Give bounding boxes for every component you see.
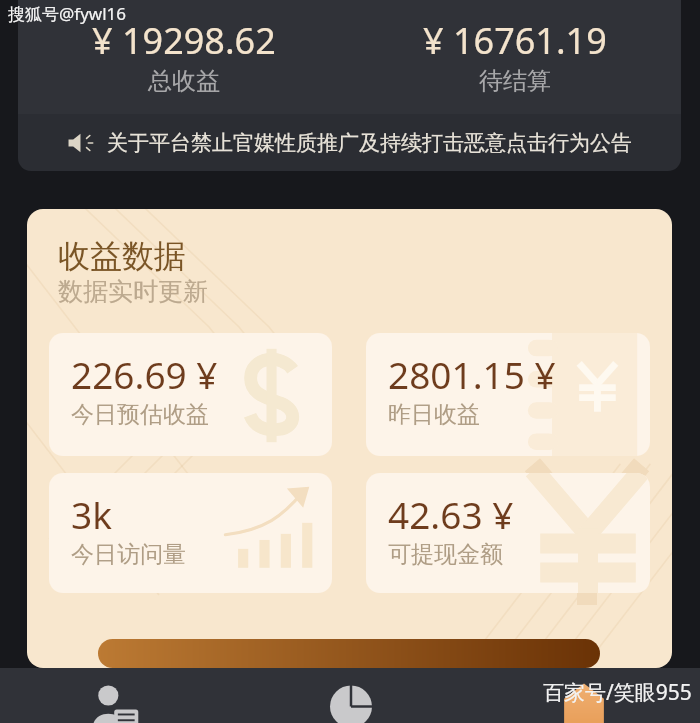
staticText: 收益数据 (58, 236, 186, 276)
staticText: 待结算 (479, 66, 551, 96)
staticText: 昨日收益 (388, 400, 480, 429)
staticText: 226.69 ¥ (71, 349, 218, 399)
staticText: 可提现金额 (388, 540, 503, 569)
button[interactable]: Account (0, 668, 234, 723)
staticText: 今日预估收益 (71, 400, 209, 429)
staticText: 总收益 (148, 66, 220, 96)
button[interactable]: ¥ 19298.62 (18, 0, 349, 114)
button[interactable]: Profile (467, 668, 700, 723)
button[interactable]: 226.69 ¥ (49, 333, 332, 456)
button[interactable]: 3k (49, 473, 332, 593)
staticText: 关于平台禁止官媒性质推广及持续打击恶意点击行为公告 (107, 130, 632, 156)
staticText: 3k (71, 489, 112, 539)
button[interactable]: 关于平台禁止官媒性质推广及持续打击恶意点击行为公告 (18, 114, 681, 171)
button[interactable]: Statistics (234, 668, 467, 723)
button[interactable]: 2801.15 ¥ (366, 333, 650, 456)
staticText: 立即提现 › (292, 663, 407, 668)
button[interactable]: 42.63 ¥ (366, 473, 650, 593)
staticText: 搜狐号@fywl16 (8, 2, 126, 25)
staticText: 42.63 ¥ (388, 489, 514, 539)
staticText: 2801.15 ¥ (388, 349, 556, 399)
button[interactable]: ¥ 16761.19 (349, 0, 681, 114)
staticText: ¥ 16761.19 (423, 16, 607, 65)
button[interactable]: 立即提现 › (98, 639, 600, 668)
staticText: 今日访问量 (71, 540, 186, 569)
staticText: 百家号/笑眼955 (543, 678, 692, 707)
staticText: 数据实时更新 (58, 276, 208, 307)
staticText: ¥ 19298.62 (92, 16, 276, 65)
